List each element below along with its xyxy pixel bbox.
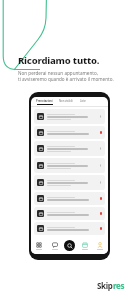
button[interactable]: Cerca [64, 240, 75, 251]
button[interactable]: Non visibili [58, 98, 74, 106]
button[interactable] [34, 109, 105, 124]
button[interactable]: Home [33, 237, 45, 254]
staticText: Prenotazioni [36, 99, 53, 103]
button[interactable] [34, 126, 105, 139]
button[interactable] [34, 175, 105, 190]
staticText: Liste [80, 99, 86, 103]
button[interactable]: Calendario [79, 237, 91, 254]
button[interactable] [34, 222, 105, 235]
button[interactable]: Skip [97, 280, 125, 291]
button[interactable]: Prenotazioni [34, 98, 54, 106]
staticText: Ricordiamo tutto. [18, 54, 100, 67]
button[interactable] [34, 158, 105, 173]
staticText: Skip [97, 280, 113, 291]
button[interactable] [34, 192, 105, 205]
button[interactable] [34, 207, 105, 220]
button[interactable]: Liste [78, 98, 88, 106]
button[interactable]: Profilo [94, 237, 106, 254]
staticText: Non visibili [59, 99, 73, 103]
staticText: ti avviseremo quando è arrivato il momen… [18, 76, 114, 82]
staticText: res [113, 280, 125, 291]
button[interactable]: Messages [49, 237, 61, 254]
button[interactable] [34, 141, 105, 156]
staticText: Non perderai nessun appuntamento, [18, 70, 98, 76]
